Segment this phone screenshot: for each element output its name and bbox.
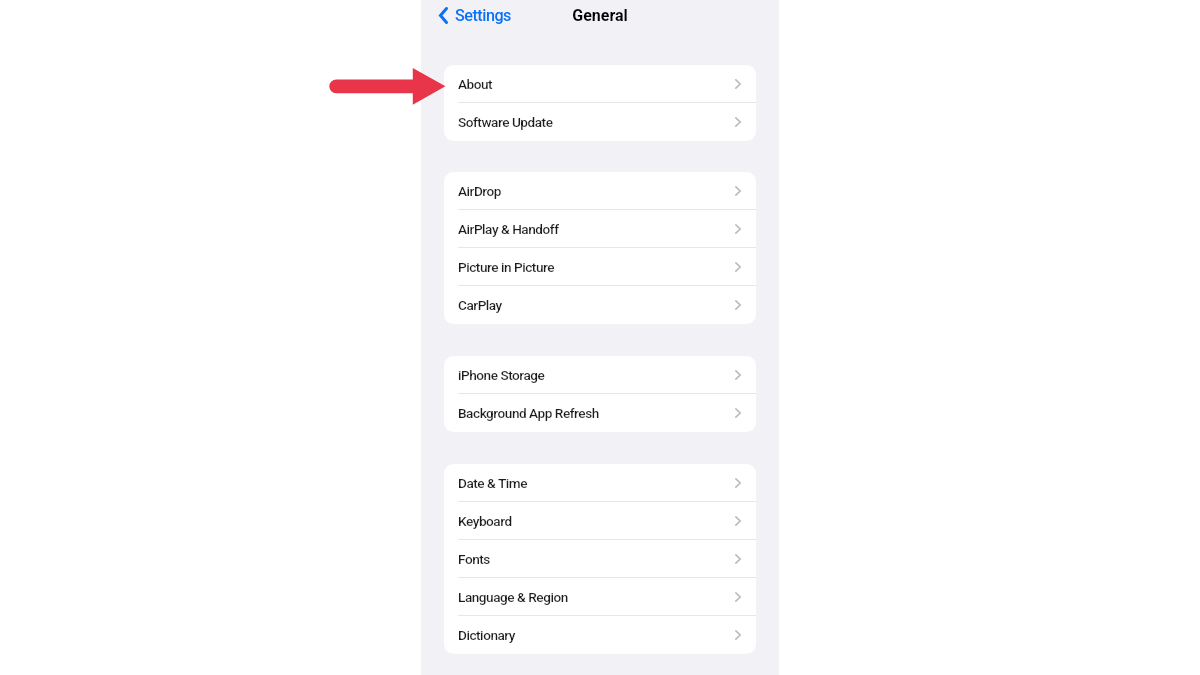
- button[interactable]: AirPlay & Handoff: [444, 210, 756, 248]
- other: Back: [439, 7, 448, 24]
- staticText: Language & Region: [458, 589, 568, 605]
- staticText: Date & Time: [458, 475, 527, 491]
- staticText: CarPlay: [458, 297, 502, 313]
- staticText: Keyboard: [458, 513, 512, 529]
- button[interactable]: Language & Region: [444, 578, 756, 616]
- staticText: Settings: [455, 6, 511, 25]
- button[interactable]: AirDrop: [444, 172, 756, 210]
- staticText: Picture in Picture: [458, 259, 555, 275]
- button[interactable]: Keyboard: [444, 502, 756, 540]
- button[interactable]: Back: [439, 6, 511, 25]
- staticText: About: [458, 76, 493, 92]
- staticText: General: [572, 6, 628, 25]
- staticText: AirDrop: [458, 183, 501, 199]
- staticText: Fonts: [458, 551, 490, 567]
- button[interactable]: Date & Time: [444, 464, 756, 502]
- staticText: Background App Refresh: [458, 405, 599, 421]
- staticText: Dictionary: [458, 627, 516, 643]
- other: Arrow pointing to About: [0, 0, 1200, 675]
- button[interactable]: iPhone Storage: [444, 356, 756, 394]
- button[interactable]: Dictionary: [444, 616, 756, 654]
- button[interactable]: CarPlay: [444, 286, 756, 324]
- button[interactable]: Picture in Picture: [444, 248, 756, 286]
- button[interactable]: About: [444, 65, 756, 103]
- staticText: Software Update: [458, 114, 553, 130]
- button[interactable]: Background App Refresh: [444, 394, 756, 432]
- button[interactable]: Fonts: [444, 540, 756, 578]
- staticText: AirPlay & Handoff: [458, 221, 559, 237]
- button[interactable]: Software Update: [444, 103, 756, 141]
- staticText: iPhone Storage: [458, 367, 545, 383]
